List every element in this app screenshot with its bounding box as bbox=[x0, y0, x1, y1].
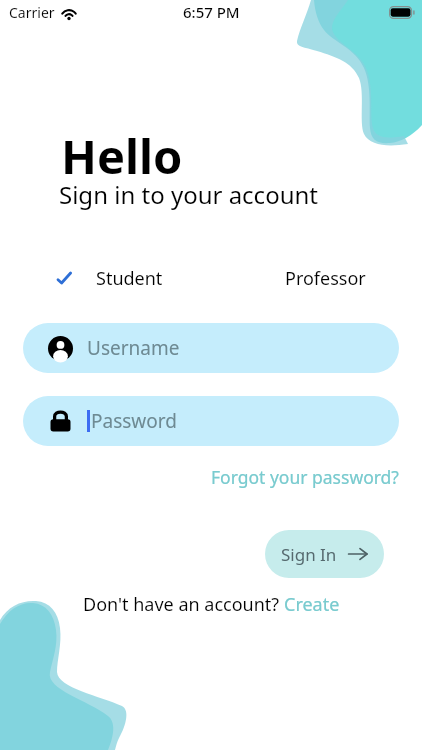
button[interactable]: Forgot your password? bbox=[211, 465, 399, 489]
staticText: Username bbox=[87, 335, 180, 361]
staticText: Professor bbox=[285, 266, 366, 291]
staticText: 6:57 PM bbox=[183, 2, 240, 22]
button[interactable]: Password bbox=[23, 396, 399, 446]
button[interactable]: Student bbox=[54, 262, 163, 295]
other: Username bbox=[48, 336, 73, 361]
other: Password bbox=[48, 409, 73, 434]
staticText: Don't have an account? bbox=[83, 592, 284, 617]
button[interactable]: Create bbox=[284, 592, 340, 617]
button[interactable]: Sign In bbox=[265, 530, 384, 578]
staticText: Password bbox=[91, 408, 177, 434]
staticText: Carrier bbox=[9, 3, 55, 22]
button[interactable]: Professor bbox=[285, 262, 366, 295]
staticText: Sign In bbox=[281, 543, 337, 566]
staticText: Sign in to your account bbox=[59, 178, 318, 211]
button[interactable]: Username bbox=[23, 323, 399, 373]
staticText: Student bbox=[96, 266, 163, 291]
staticText: Hello bbox=[61, 124, 183, 188]
